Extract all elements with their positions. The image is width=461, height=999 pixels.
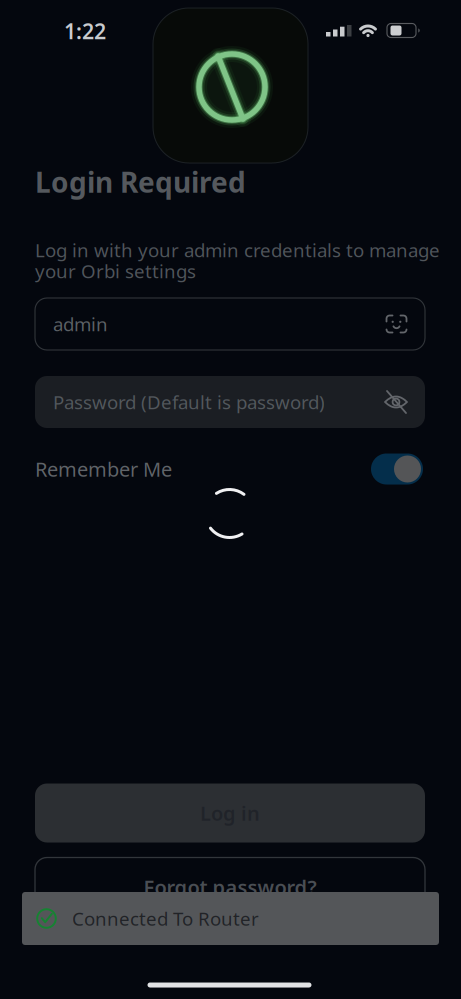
- staticText: 1:22: [64, 17, 106, 45]
- button[interactable]: Scan credentials: [380, 308, 412, 340]
- button[interactable]: Remember Me: [371, 453, 423, 484]
- button[interactable]: admin: [35, 298, 425, 350]
- button[interactable]: Password (Default is password): [35, 376, 425, 428]
- staticText: Login Required: [35, 163, 246, 201]
- staticText: Log in with your admin credentials to ma…: [35, 238, 440, 262]
- staticText: Password (Default is password): [53, 390, 325, 414]
- staticText: Remember Me: [35, 456, 172, 482]
- staticText: Forgot password?: [143, 874, 316, 900]
- staticText: Connected To Router: [72, 906, 259, 931]
- staticText: admin: [53, 312, 108, 336]
- staticText: your Orbi settings: [35, 259, 196, 283]
- button[interactable]: Forgot password?: [35, 857, 425, 916]
- staticText: Log in: [200, 800, 260, 826]
- button[interactable]: Show password: [380, 386, 412, 418]
